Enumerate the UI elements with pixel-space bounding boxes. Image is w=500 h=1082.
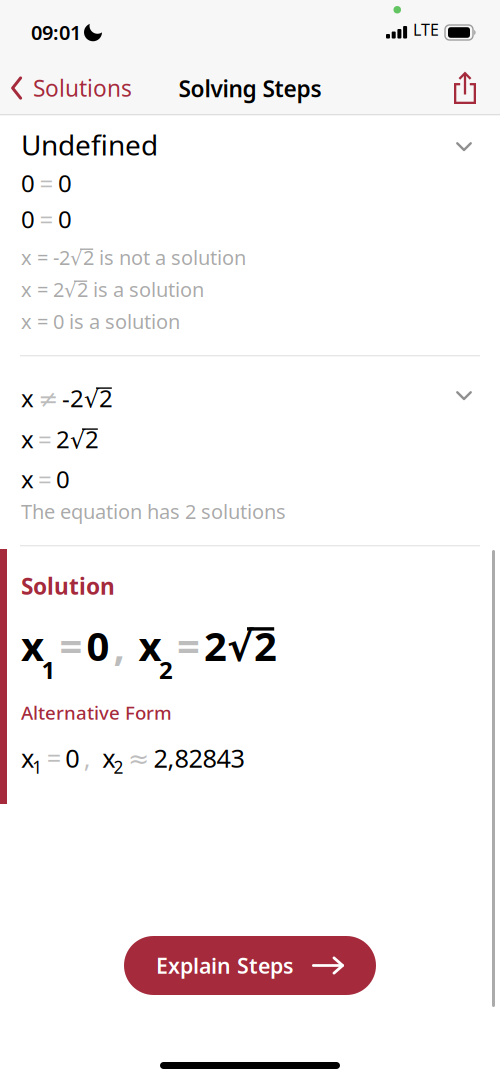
staticText: 2 [204,619,227,672]
staticText: LTE [413,19,439,40]
staticText: x [102,741,115,775]
staticText: x [21,423,34,455]
staticText: = [38,423,52,455]
staticText: 2 [159,654,173,686]
staticText: = [39,203,53,235]
staticText: 2,82843 [153,741,244,775]
staticText: Solutions [33,73,132,103]
staticText: x = 0 is a solution [21,308,180,335]
staticText: 0 [21,203,35,235]
staticText: = [47,741,61,775]
staticText: 0 [65,741,79,775]
staticText: ≈ [128,744,149,773]
staticText: x [21,741,34,775]
staticText: x [21,382,34,414]
staticText: x [21,463,34,495]
staticText: = [177,619,200,672]
staticText: Solution [21,571,115,601]
button[interactable]: Solutions [11,73,132,103]
staticText: = [38,463,52,495]
staticText: 0 [86,619,109,672]
staticText: √2 [84,382,113,414]
staticText: 0 [56,463,70,495]
staticText: x [138,619,161,672]
staticText: x = -2 [21,244,70,271]
staticText: Undefined [21,126,158,163]
staticText: 0 [58,167,72,199]
staticText: 2 [113,755,123,778]
staticText: x = 2 [21,276,64,303]
staticText: √2 [70,423,99,455]
button[interactable]: Share [454,72,476,104]
staticText: Alternative Form [21,700,172,725]
staticText: is a solution [88,276,204,303]
staticText: 0 [58,203,72,235]
staticText: Solving Steps [178,73,321,104]
staticText: 2 [56,423,70,455]
staticText: -2 [62,382,84,414]
button[interactable]: Collapse section [456,142,472,152]
staticText: √2 [227,619,277,672]
staticText: ≠ [38,385,58,412]
button[interactable]: Explain Steps [124,936,376,995]
button[interactable]: Collapse section [456,391,472,401]
staticText: The equation has 2 solutions [21,498,286,525]
staticText: = [59,619,82,672]
staticText: , [113,619,134,672]
staticText: is not a solution [94,244,246,271]
staticText: , [84,741,98,775]
staticText: √2 [70,244,94,271]
staticText: x [21,619,44,672]
staticText: 09:01 [31,19,81,46]
staticText: 1 [32,755,42,778]
staticText: Explain Steps [156,951,294,980]
staticText: = [39,167,53,199]
staticText: 0 [21,167,35,199]
staticText: √2 [64,276,88,303]
staticText: 1 [41,654,55,686]
